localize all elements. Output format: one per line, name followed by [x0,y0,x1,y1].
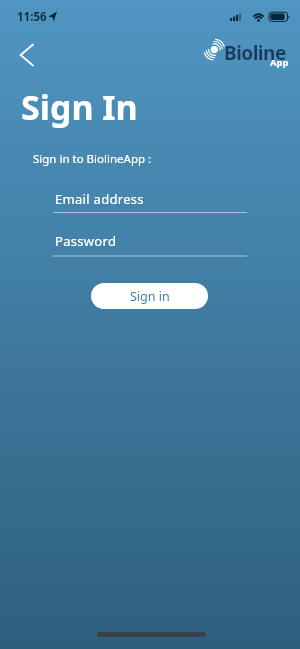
staticText: Sign in [130,288,170,305]
staticText: Bioline [224,40,286,66]
staticText: 11:56 [17,9,47,25]
staticText: Sign In [21,84,138,130]
staticText: Sign in to BiolineApp : [33,151,152,167]
staticText: App [270,56,289,69]
staticText: Email address [55,190,144,208]
staticText: Password [55,232,117,250]
